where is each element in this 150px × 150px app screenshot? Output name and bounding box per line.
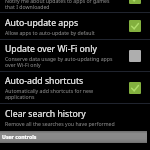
button[interactable]: Auto-update apps <box>0 13 150 39</box>
button[interactable]: Unchecked <box>129 50 141 62</box>
button[interactable]: Checked <box>129 82 141 94</box>
staticText: Remove all the searches you have perform… <box>5 120 115 127</box>
staticText: Auto-update apps <box>5 17 79 29</box>
staticText: Conserve data usage by auto-updating app… <box>5 55 113 69</box>
button[interactable]: Notify me about updates to apps or games… <box>0 0 150 12</box>
button[interactable]: User controls <box>0 131 147 143</box>
staticText: Allow apps to auto-update by default <box>5 29 95 36</box>
button[interactable]: Checked <box>129 0 141 4</box>
staticText: Notify me about updates to apps or games… <box>5 0 110 9</box>
staticText: Clear search history <box>5 108 86 120</box>
button[interactable]: Checked <box>129 20 141 32</box>
staticText: Update over Wi-Fi only <box>5 43 97 55</box>
staticText: Automatically add shortcuts for new appl… <box>5 87 93 101</box>
button[interactable]: Clear search history <box>0 104 150 131</box>
staticText: User controls <box>2 133 37 140</box>
button[interactable]: Update over Wi-Fi only <box>0 40 150 71</box>
staticText: Auto-add shortcuts <box>5 75 84 87</box>
button[interactable]: Auto-add shortcuts <box>0 72 150 103</box>
